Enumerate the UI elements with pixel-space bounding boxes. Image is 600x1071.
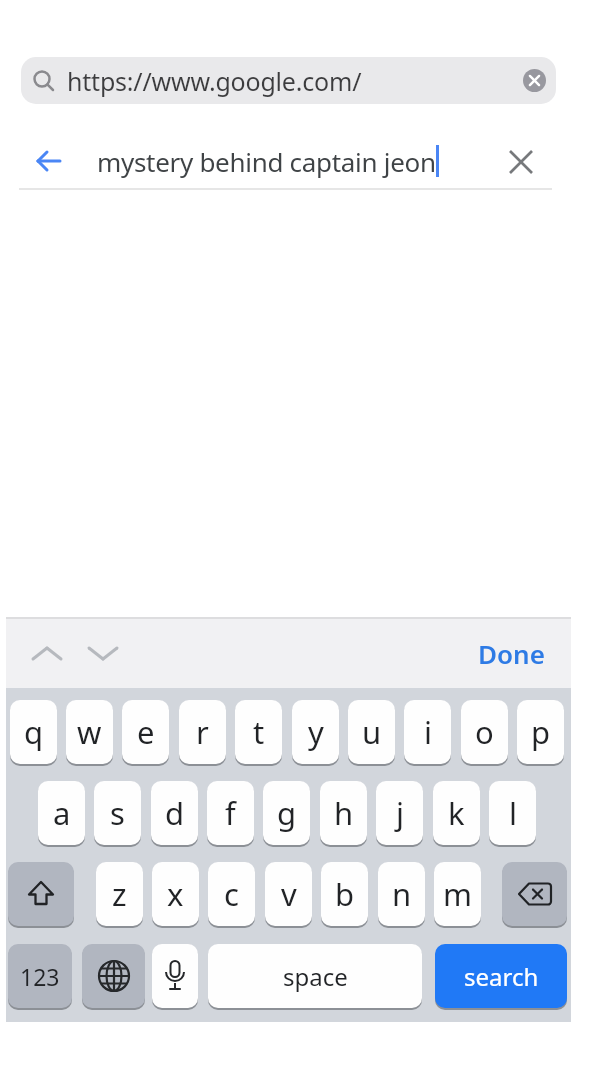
staticText: f — [225, 792, 236, 834]
button[interactable]: n — [378, 862, 425, 926]
button[interactable]: s — [94, 781, 141, 845]
staticText: t — [253, 711, 265, 753]
staticText: q — [24, 711, 44, 753]
button[interactable]: i — [404, 700, 451, 764]
button[interactable]: h — [320, 781, 367, 845]
button[interactable]: l — [489, 781, 536, 845]
button[interactable]: q — [10, 700, 57, 764]
staticText: space — [283, 960, 348, 993]
button[interactable]: search — [435, 944, 567, 1008]
button[interactable]: p — [517, 700, 564, 764]
staticText: g — [277, 792, 297, 834]
button[interactable]: e — [122, 700, 169, 764]
button[interactable]: r — [179, 700, 226, 764]
button[interactable]: k — [433, 781, 480, 845]
button[interactable]: g — [263, 781, 310, 845]
button[interactable] — [152, 944, 198, 1008]
button[interactable]: f — [207, 781, 254, 845]
button[interactable] — [34, 146, 64, 176]
staticText: https://www.google.com/ — [67, 64, 362, 98]
button[interactable]: y — [292, 700, 339, 764]
button[interactable]: u — [348, 700, 395, 764]
button[interactable]: w — [66, 700, 113, 764]
button[interactable]: Done — [478, 636, 545, 671]
staticText: k — [448, 792, 465, 834]
button[interactable]: o — [461, 700, 508, 764]
staticText: w — [77, 711, 102, 753]
staticText: l — [509, 792, 517, 834]
button[interactable]: d — [151, 781, 198, 845]
staticText: mystery behind captain jeon — [97, 144, 436, 179]
staticText: b — [335, 873, 355, 915]
button[interactable] — [82, 944, 145, 1008]
staticText: m — [443, 873, 472, 915]
staticText: d — [165, 792, 185, 834]
button[interactable]: z — [96, 862, 143, 926]
button[interactable]: 123 — [8, 944, 72, 1008]
button[interactable] — [508, 149, 534, 175]
button[interactable]: x — [152, 862, 199, 926]
button[interactable]: m — [434, 862, 481, 926]
staticText: h — [334, 792, 354, 834]
staticText: n — [392, 873, 412, 915]
staticText: Done — [478, 636, 545, 671]
button[interactable] — [523, 69, 546, 92]
button[interactable]: c — [208, 862, 255, 926]
staticText: x — [167, 873, 184, 915]
button[interactable] — [8, 862, 74, 926]
staticText: s — [110, 792, 125, 834]
button[interactable]: https://www.google.com/ — [21, 57, 556, 104]
staticText: v — [281, 873, 297, 915]
button[interactable]: t — [235, 700, 282, 764]
button[interactable] — [502, 862, 567, 926]
staticText: c — [224, 873, 239, 915]
button[interactable]: space — [208, 944, 422, 1008]
staticText: e — [137, 711, 155, 753]
staticText: a — [53, 792, 71, 834]
button[interactable]: v — [265, 862, 312, 926]
staticText: o — [475, 711, 494, 753]
staticText: z — [112, 873, 127, 915]
button[interactable]: a — [38, 781, 85, 845]
staticText: 123 — [20, 961, 60, 992]
button[interactable]: j — [376, 781, 423, 845]
staticText: i — [424, 711, 432, 753]
staticText: r — [196, 711, 209, 753]
staticText: y — [308, 711, 324, 753]
staticText: p — [531, 711, 551, 753]
staticText: u — [362, 711, 382, 753]
staticText: j — [396, 792, 404, 834]
button[interactable]: b — [321, 862, 368, 926]
staticText: search — [464, 960, 539, 993]
